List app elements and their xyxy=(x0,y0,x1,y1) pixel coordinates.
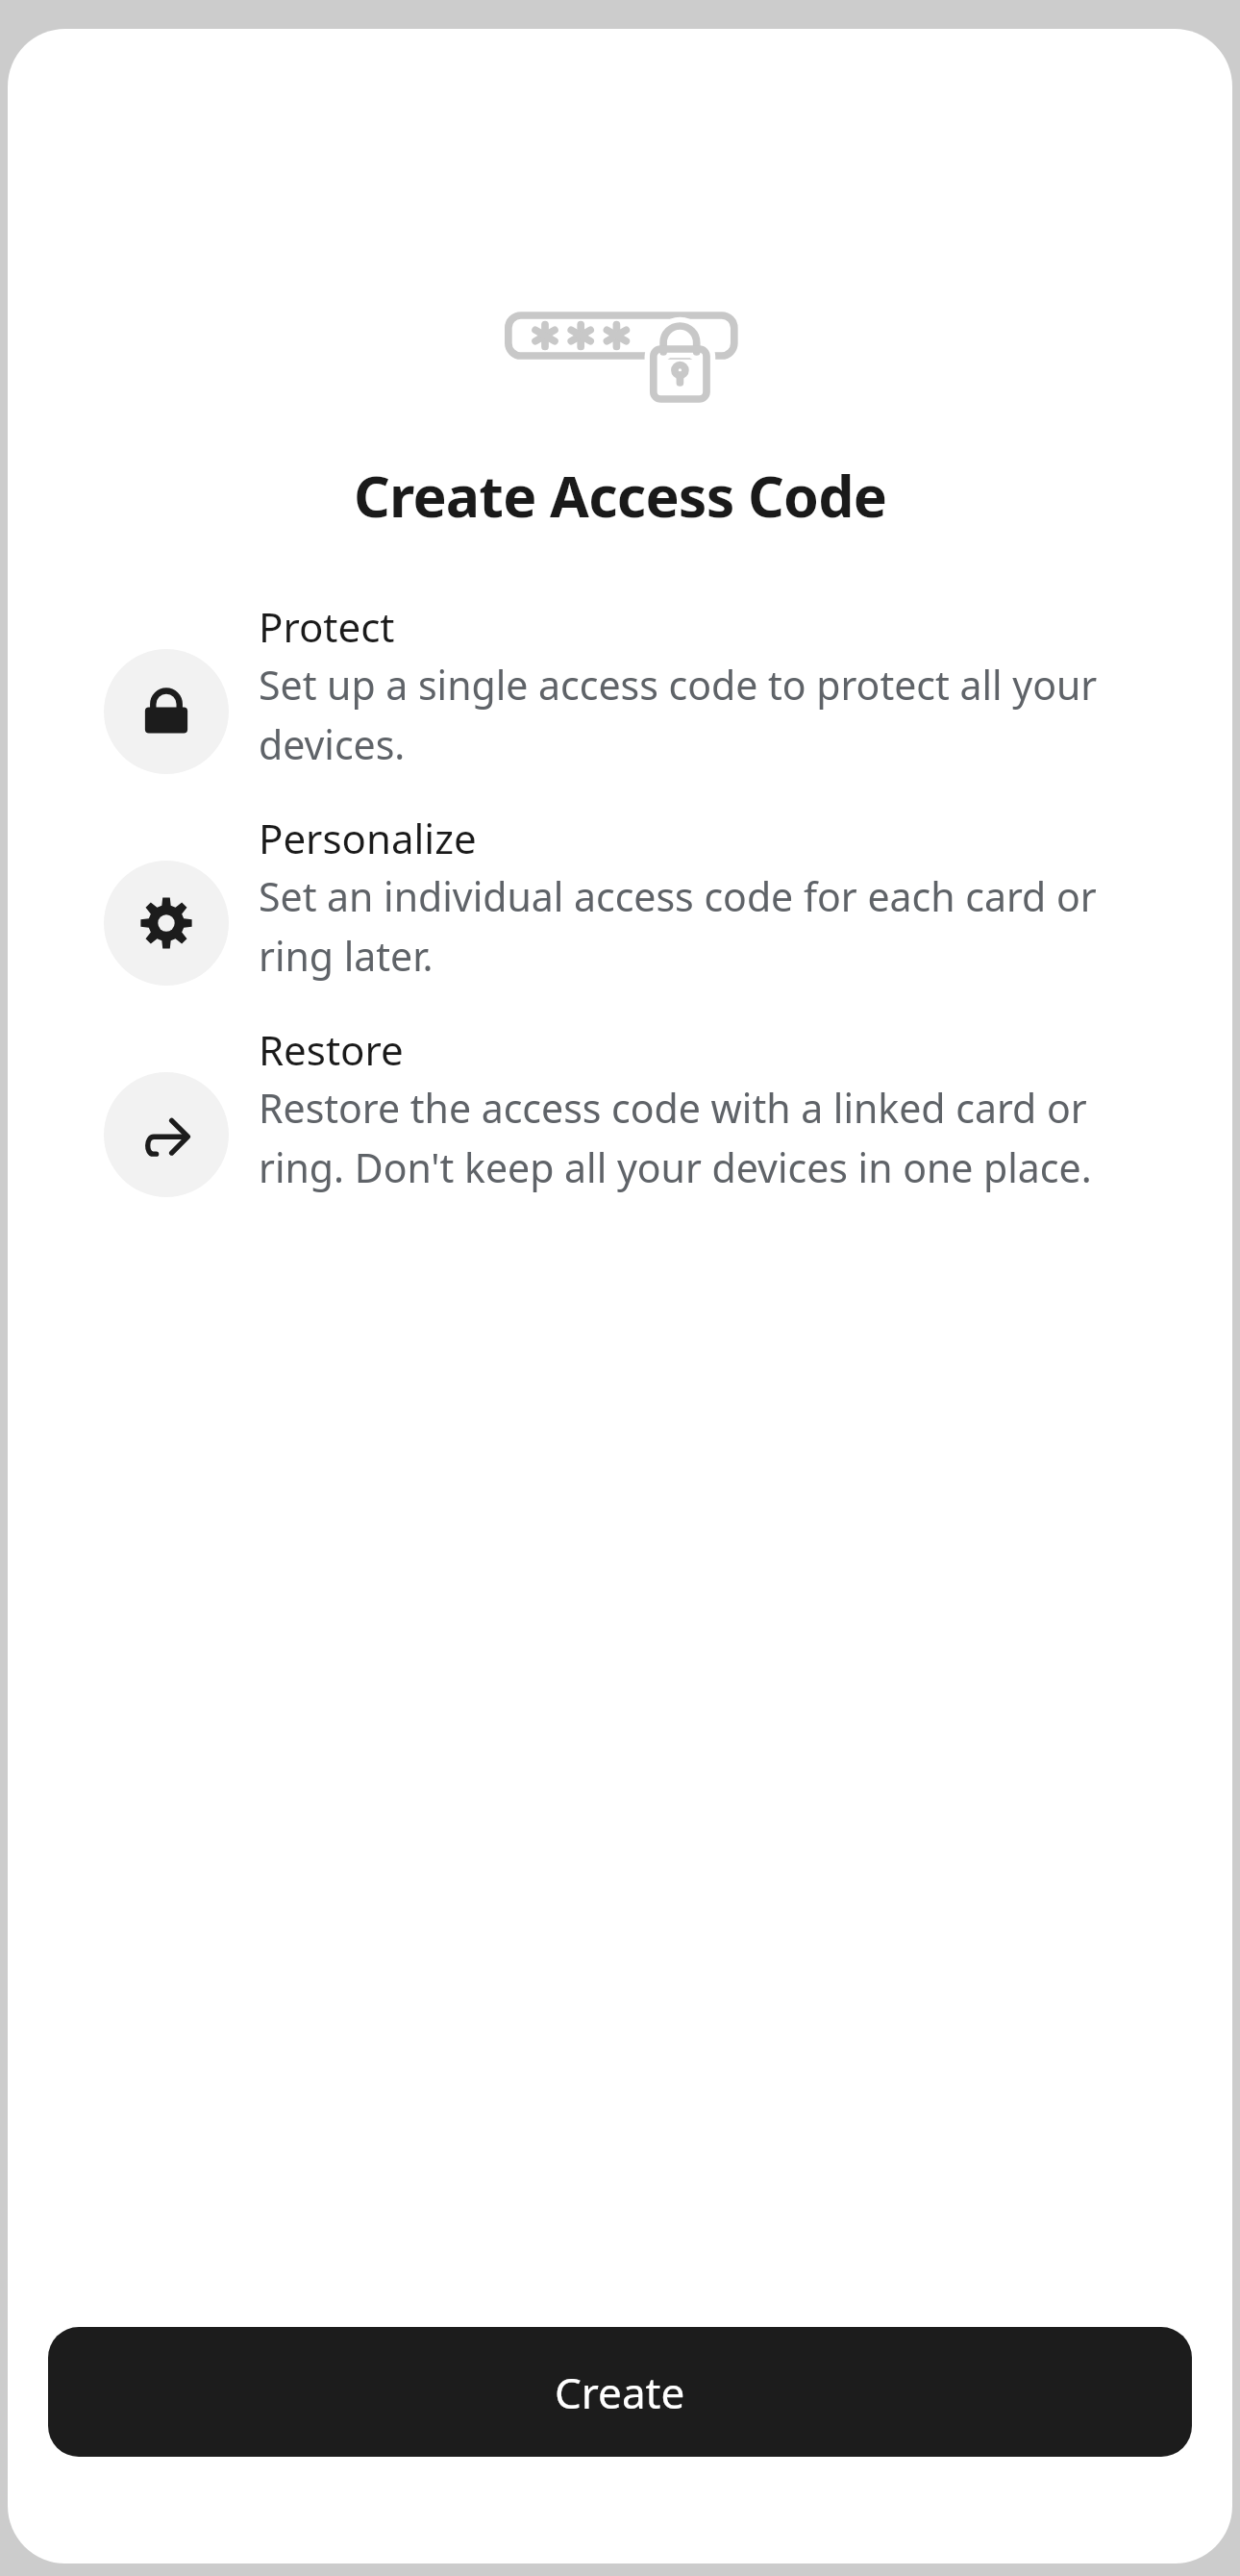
staticText: Create xyxy=(555,2363,685,2421)
staticText: Restore xyxy=(259,1022,404,1077)
staticText: Personalize xyxy=(259,811,477,865)
button[interactable]: Personalize xyxy=(104,811,1146,986)
staticText: Create Access Code xyxy=(8,457,1232,534)
staticText: Set up a single access code to protect a… xyxy=(259,658,1146,771)
other: Restore xyxy=(104,1072,229,1197)
staticText: Protect xyxy=(259,599,395,654)
other: Personalize xyxy=(104,861,229,986)
staticText: Set an individual access code for each c… xyxy=(259,869,1146,983)
button[interactable]: Protect xyxy=(104,599,1146,774)
button[interactable]: Create xyxy=(48,2327,1192,2457)
staticText: Restore the access code with a linked ca… xyxy=(259,1081,1146,1194)
other: Protect xyxy=(104,649,229,774)
button[interactable]: Restore xyxy=(104,1022,1146,1197)
